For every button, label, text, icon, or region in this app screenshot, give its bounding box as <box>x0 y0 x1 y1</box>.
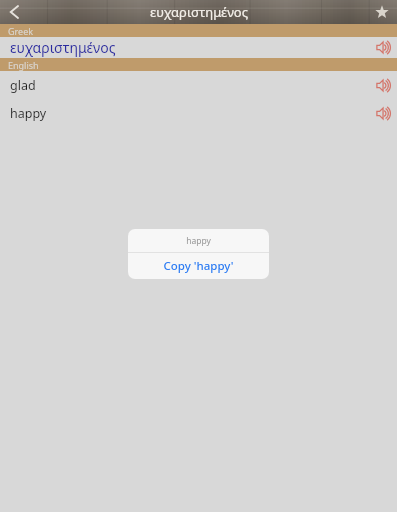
button[interactable]: Play pronunciation <box>369 37 397 58</box>
staticText: happy <box>10 105 369 122</box>
button[interactable]: ευχαριστημένος <box>0 37 397 58</box>
button[interactable]: Play pronunciation <box>369 71 397 99</box>
button[interactable]: Copy 'happy' <box>128 253 269 279</box>
staticText: ευχαριστημένος <box>10 38 369 57</box>
staticText: ευχαριστημένος <box>150 3 248 21</box>
staticText: English <box>8 59 39 71</box>
button[interactable]: Back <box>0 0 28 24</box>
button[interactable]: Favorite <box>367 0 397 24</box>
button[interactable]: Play pronunciation <box>369 99 397 127</box>
staticText: Greek <box>8 25 34 37</box>
button[interactable]: glad <box>0 71 397 99</box>
staticText: happy <box>186 235 211 247</box>
staticText: glad <box>10 77 369 94</box>
button[interactable]: happy <box>0 99 397 127</box>
staticText: Copy 'happy' <box>163 258 234 274</box>
